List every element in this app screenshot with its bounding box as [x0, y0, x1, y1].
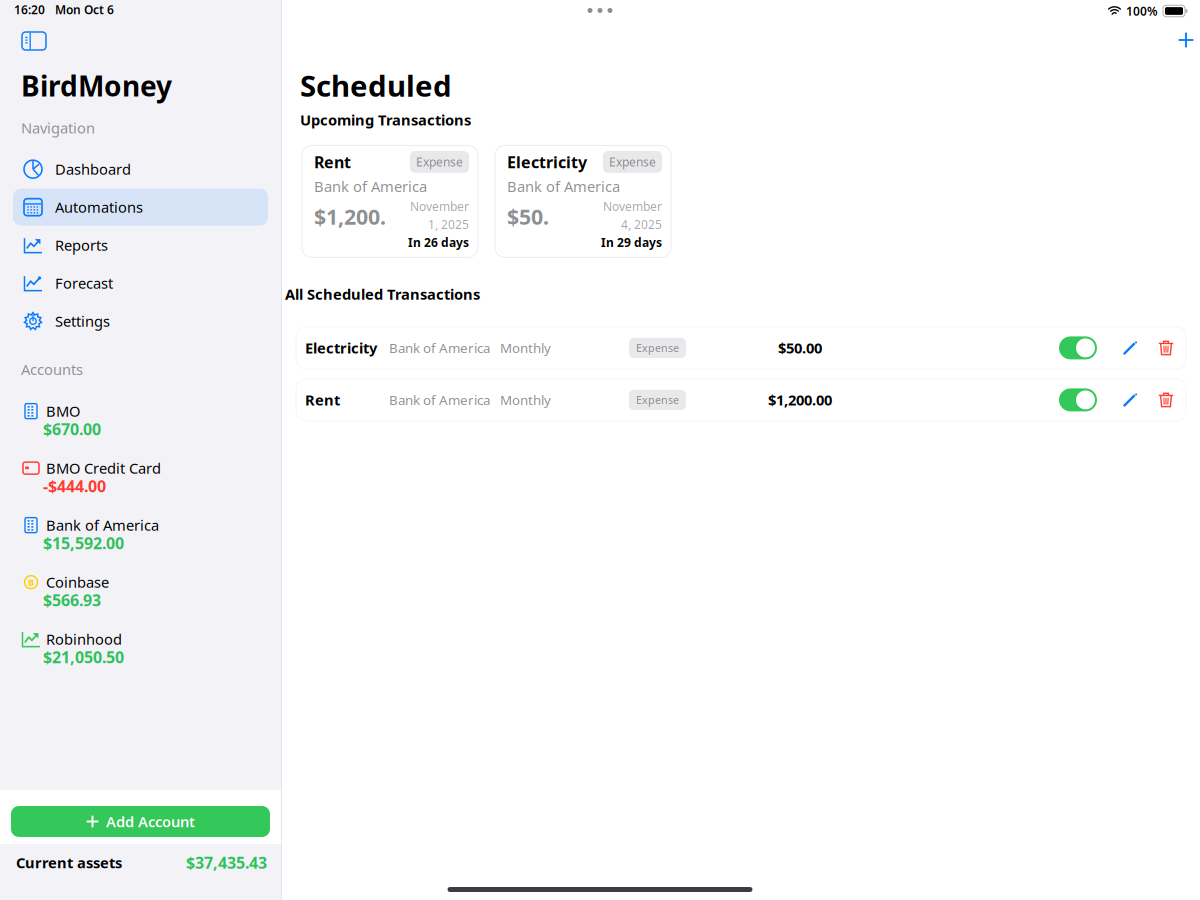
staticText: Rent — [305, 390, 340, 410]
staticText: In 26 days — [408, 234, 469, 250]
button[interactable]: Toggle Sidebar — [20, 30, 48, 52]
button[interactable]: Delete Electricity — [1151, 333, 1181, 362]
button[interactable]: Reports — [13, 227, 268, 264]
button[interactable]: Add Account — [11, 806, 270, 837]
staticText: Expense — [636, 393, 679, 407]
staticText: 16:20 — [14, 1, 45, 17]
staticText: Electricity — [507, 151, 587, 172]
staticText: $50. — [507, 202, 549, 231]
staticText: B — [28, 576, 34, 588]
button[interactable]: B — [0, 573, 281, 609]
button[interactable]: Electricity — [495, 145, 671, 257]
staticText: Rent — [314, 151, 351, 172]
button[interactable]: Add Scheduled Transaction — [1174, 26, 1198, 54]
staticText: Bank of America — [507, 177, 620, 196]
staticText: Forecast — [55, 273, 113, 293]
staticText: Scheduled — [300, 66, 452, 105]
staticText: Expense — [416, 154, 463, 170]
button[interactable]: Electricity — [305, 327, 890, 369]
staticText: Bank of America — [389, 339, 490, 357]
staticText: Bank of America — [389, 391, 490, 409]
button[interactable]: Robinhood — [0, 630, 281, 666]
button[interactable]: Toggle Electricity — [1059, 336, 1097, 359]
staticText: $21,050.50 — [43, 646, 124, 668]
staticText: Bank of America — [314, 177, 427, 196]
staticText: Settings — [55, 311, 110, 331]
staticText: All Scheduled Transactions — [285, 284, 480, 304]
staticText: Automations — [55, 197, 143, 217]
button[interactable]: Delete Rent — [1151, 385, 1181, 414]
staticText: Coinbase — [46, 572, 109, 592]
staticText: Monthly — [500, 391, 551, 409]
staticText: Electricity — [305, 338, 377, 358]
staticText: 100% — [1126, 3, 1158, 19]
staticText: Add Account — [106, 812, 195, 831]
staticText: $670.00 — [43, 418, 101, 440]
staticText: Dashboard — [55, 159, 131, 179]
staticText: $1,200.00 — [768, 390, 832, 410]
staticText: BMO — [46, 401, 80, 421]
button[interactable]: Bank of America — [0, 516, 281, 552]
staticText: Navigation — [21, 118, 95, 138]
staticText: BirdMoney — [21, 67, 172, 104]
staticText: In 29 days — [601, 234, 662, 250]
staticText: BMO Credit Card — [46, 458, 161, 478]
staticText: Reports — [55, 235, 108, 255]
button[interactable]: Forecast — [13, 265, 268, 302]
staticText: Expense — [609, 154, 656, 170]
staticText: $50.00 — [778, 338, 822, 358]
staticText: $566.93 — [43, 589, 101, 611]
button[interactable]: Automations — [13, 189, 268, 226]
staticText: -$444.00 — [43, 475, 106, 497]
staticText: 4, 2025 — [621, 216, 662, 232]
staticText: 1, 2025 — [428, 216, 469, 232]
staticText: Mon Oct 6 — [55, 1, 114, 17]
button[interactable]: Dashboard — [13, 151, 268, 188]
button[interactable]: BMO — [0, 402, 281, 438]
staticText: $1,200. — [314, 202, 386, 231]
staticText: $15,592.00 — [43, 532, 124, 554]
button[interactable]: Rent — [302, 145, 478, 257]
staticText: November — [410, 198, 469, 214]
staticText: Bank of America — [46, 515, 159, 535]
staticText: Monthly — [500, 339, 551, 357]
staticText: November — [603, 198, 662, 214]
button[interactable]: Edit Electricity — [1113, 332, 1147, 364]
button[interactable]: Edit Rent — [1113, 384, 1147, 416]
button[interactable]: Settings — [13, 303, 268, 340]
staticText: Upcoming Transactions — [300, 110, 471, 129]
staticText: Accounts — [21, 360, 83, 379]
staticText: Current assets — [16, 853, 122, 872]
staticText: Expense — [636, 341, 679, 355]
staticText: Robinhood — [46, 629, 122, 649]
button[interactable]: BMO Credit Card — [0, 459, 281, 495]
button[interactable]: Rent — [305, 379, 890, 421]
staticText: $37,435.43 — [186, 852, 267, 873]
button[interactable]: Toggle Rent — [1059, 388, 1097, 411]
